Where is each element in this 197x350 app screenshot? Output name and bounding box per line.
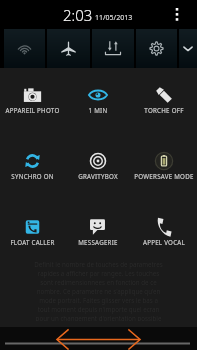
button[interactable]: POWERSAVE MODE — [131, 134, 197, 200]
staticText: POWERSAVE MODE — [131, 172, 197, 180]
staticText: MESSAGERIE — [65, 238, 131, 246]
button[interactable]: TORCHE OFF — [131, 68, 197, 134]
button[interactable]: GRAVITYBOX — [65, 134, 131, 200]
staticText: GRAVITYBOX — [65, 172, 131, 180]
staticText: 1 MIN — [65, 106, 131, 114]
staticText: APPAREIL PHOTO — [0, 106, 65, 114]
staticText: APPEL VOCAL — [131, 238, 197, 246]
staticText: 11/05/2013 — [95, 13, 133, 23]
button[interactable]: Airplane mode — [47, 29, 90, 68]
staticText: SYNCHRO ON — [0, 172, 65, 180]
staticText: TORCHE OFF — [131, 106, 197, 114]
button[interactable]: Settings — [136, 29, 177, 68]
button[interactable]: APPEL VOCAL — [131, 200, 197, 266]
button[interactable]: More options — [168, 4, 186, 22]
button[interactable]: Mobile data — [92, 29, 134, 68]
button[interactable]: SYNCHRO ON — [0, 134, 65, 200]
staticText: FLOAT CALLER — [0, 238, 65, 246]
button[interactable]: MESSAGERIE — [65, 200, 131, 266]
button[interactable]: 1 MIN — [65, 68, 131, 134]
button[interactable]: APPAREIL PHOTO — [0, 68, 65, 134]
button[interactable]: Expand — [179, 29, 197, 68]
staticText: 2:03 — [63, 5, 93, 25]
button[interactable]: Wi-Fi — [4, 29, 45, 68]
button[interactable]: FLOAT CALLER — [0, 200, 65, 266]
